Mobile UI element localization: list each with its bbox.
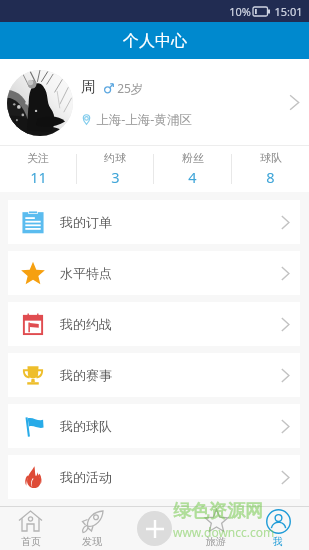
button[interactable]: Me: [247, 507, 309, 550]
button[interactable]: 我的约战: [8, 302, 300, 346]
staticText: 8: [266, 167, 275, 187]
staticText: 粉丝: [182, 151, 204, 165]
button[interactable]: 我的球队: [8, 404, 300, 448]
button[interactable]: Home: [0, 507, 61, 550]
staticText: 10%: [229, 4, 251, 19]
button[interactable]: Discover: [61, 507, 123, 550]
staticText: 旅游: [206, 535, 226, 548]
button[interactable]: Travel: [185, 507, 247, 550]
button[interactable]: 我的订单: [8, 200, 300, 244]
staticText: 我的订单: [60, 214, 112, 230]
other: Travel: [204, 509, 229, 534]
button[interactable]: 关注: [0, 146, 76, 192]
other: Home: [18, 509, 43, 534]
staticText: 周: [81, 78, 96, 97]
staticText: 4: [188, 167, 197, 187]
button[interactable]: 约球: [77, 146, 153, 192]
button[interactable]: 粉丝: [154, 146, 231, 192]
staticText: 我: [273, 535, 283, 548]
staticText: 绿色资源网: [173, 500, 263, 523]
staticText: 约球: [104, 151, 126, 165]
other: More: [281, 266, 290, 281]
staticText: 3: [111, 167, 120, 187]
staticText: 我的活动: [60, 469, 112, 485]
other: More: [289, 94, 300, 111]
staticText: 11: [30, 167, 47, 187]
other: More: [281, 419, 290, 434]
other: Me: [266, 509, 291, 534]
staticText: 15:01: [274, 4, 303, 19]
other: Discover: [80, 509, 105, 534]
staticText: 球队: [260, 151, 282, 165]
staticText: 水平特点: [60, 265, 112, 281]
button[interactable]: Add: [137, 511, 172, 546]
other: More: [281, 317, 290, 332]
staticText: 关注: [27, 151, 49, 165]
button[interactable]: 水平特点: [8, 251, 300, 295]
other: More: [281, 368, 290, 383]
button[interactable]: 球队: [232, 146, 309, 192]
button[interactable]: 我的活动: [8, 455, 300, 499]
other: More: [281, 215, 290, 230]
staticText: www.downcc.com: [173, 524, 275, 540]
staticText: 上海-上海-黄浦区: [96, 111, 192, 128]
staticText: 我的球队: [60, 418, 112, 434]
other: More: [281, 470, 290, 485]
staticText: 发现: [82, 535, 102, 548]
staticText: 首页: [21, 535, 41, 548]
staticText: 个人中心: [123, 31, 187, 51]
staticText: 我的赛事: [60, 367, 112, 383]
staticText: 25岁: [117, 80, 143, 96]
button[interactable]: 我的赛事: [8, 353, 300, 397]
staticText: 我的约战: [60, 316, 112, 332]
button[interactable]: 周: [0, 59, 309, 146]
